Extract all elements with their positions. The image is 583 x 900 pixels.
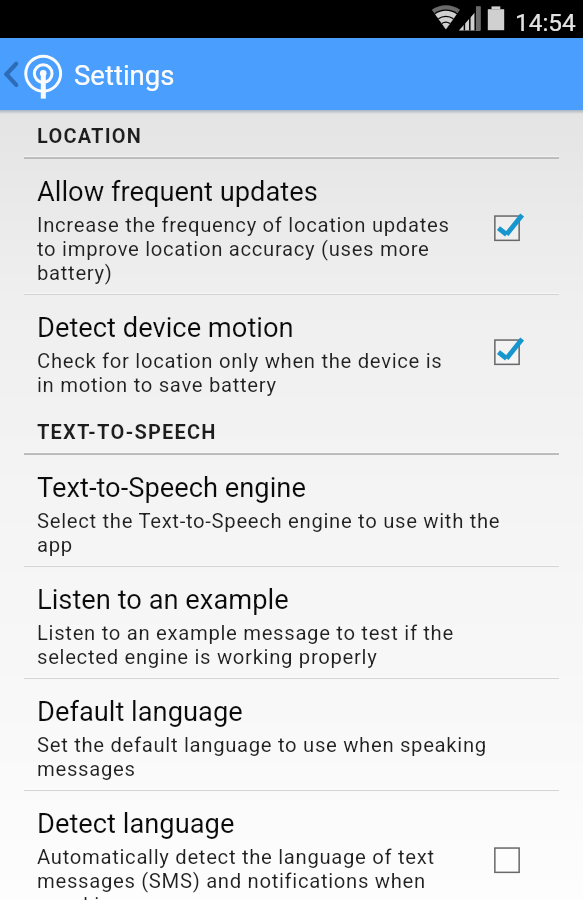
- staticText: Select the Text-to-Speech engine to use …: [37, 509, 520, 557]
- button[interactable]: Detect device motion: [0, 295, 583, 406]
- staticText: Allow frequent updates: [37, 176, 318, 208]
- staticText: Detect language: [37, 808, 235, 840]
- staticText: Set the default language to use when spe…: [37, 733, 520, 781]
- staticText: TEXT-TO-SPEECH: [37, 420, 217, 443]
- button[interactable]: Listen to an example: [0, 567, 583, 678]
- button[interactable]: Allow frequent updates: [460, 208, 554, 246]
- button[interactable]: Detect device motion: [460, 332, 554, 370]
- staticText: Check for location only when the device …: [37, 349, 460, 397]
- button[interactable]: Detect language: [0, 791, 583, 900]
- button[interactable]: Allow frequent updates: [0, 159, 583, 294]
- button[interactable]: Detect language: [460, 840, 554, 878]
- staticText: Text-to-Speech engine: [37, 472, 306, 504]
- button[interactable]: Default language: [0, 679, 583, 790]
- staticText: 14:54: [515, 8, 576, 37]
- staticText: LOCATION: [37, 124, 143, 147]
- staticText: Detect device motion: [37, 312, 294, 344]
- button[interactable]: Text-to-Speech engine: [0, 455, 583, 566]
- button[interactable]: Navigate up: [0, 38, 583, 110]
- staticText: Listen to an example message to test if …: [37, 621, 520, 669]
- staticText: Listen to an example: [37, 584, 289, 616]
- staticText: Default language: [37, 696, 243, 728]
- staticText: Increase the frequency of location updat…: [37, 213, 460, 285]
- staticText: Settings: [74, 59, 175, 91]
- staticText: Automatically detect the language of tex…: [37, 845, 460, 900]
